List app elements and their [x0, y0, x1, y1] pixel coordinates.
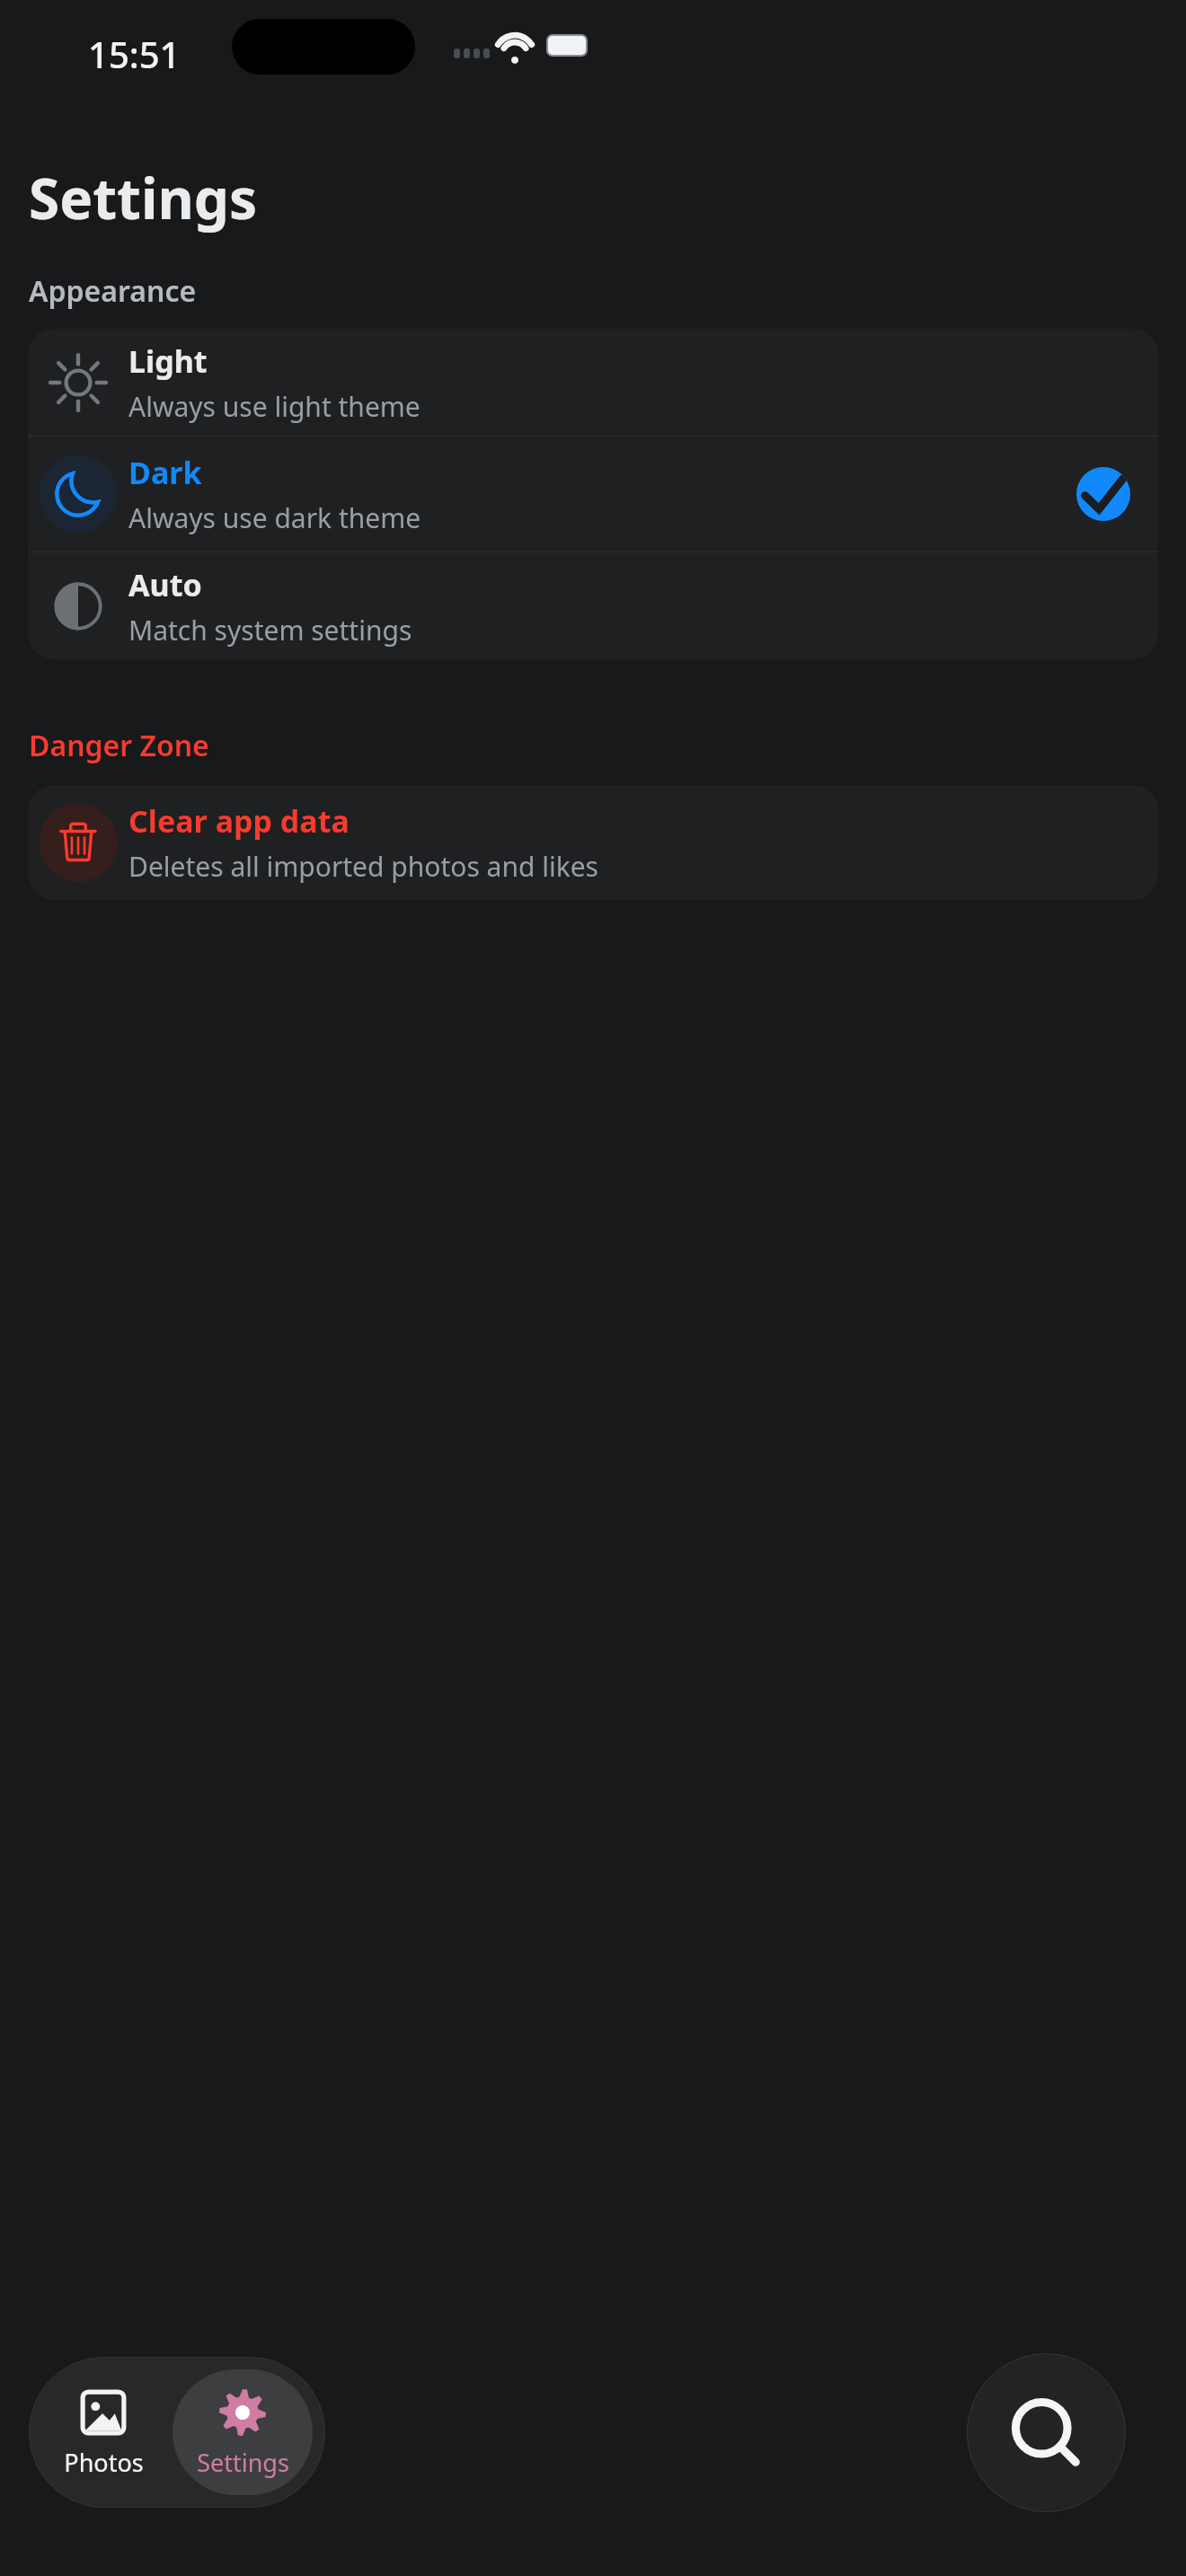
- button[interactable]: Photos: [41, 2369, 165, 2495]
- button[interactable]: Clear app data: [28, 785, 1158, 900]
- staticText: Settings: [197, 2446, 289, 2479]
- staticText: Photos: [64, 2446, 144, 2479]
- button[interactable]: Auto: [28, 552, 1158, 659]
- staticText: Always use light theme: [128, 388, 420, 425]
- staticText: Deletes all imported photos and likes: [128, 848, 598, 885]
- button[interactable]: Search: [967, 2353, 1126, 2512]
- staticText: Light: [128, 340, 208, 382]
- staticText: Always use dark theme: [128, 499, 421, 536]
- staticText: Auto: [128, 564, 202, 605]
- staticText: 15:51: [88, 30, 181, 78]
- button[interactable]: Light: [28, 329, 1158, 436]
- button[interactable]: Settings: [173, 2369, 313, 2495]
- button[interactable]: Dark: [28, 437, 1158, 551]
- staticText: Danger Zone: [29, 726, 209, 765]
- staticText: Settings: [29, 160, 258, 235]
- staticText: Dark: [128, 452, 202, 493]
- staticText: Clear app data: [128, 800, 350, 842]
- staticText: Match system settings: [128, 612, 412, 648]
- staticText: Appearance: [29, 271, 197, 311]
